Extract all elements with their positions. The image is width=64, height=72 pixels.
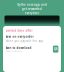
staticText: Try the new app and [17,3,47,6]
staticText: when you pay with the app [6,39,44,43]
staticText: QR [54,47,58,51]
staticText: Limited time offer [6,29,33,32]
staticText: Scan to download [6,46,32,50]
staticText: Save on every order [6,35,34,38]
staticText: every time [24,11,39,15]
button[interactable]: Scan QR code [53,46,58,53]
staticText: Point your camera here [6,50,23,52]
staticText: get rewarded [22,7,42,11]
